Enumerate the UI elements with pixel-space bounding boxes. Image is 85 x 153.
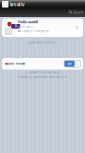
button[interactable]: Search <box>69 10 84 14</box>
staticText: Mobile Theme <box>4 62 25 65</box>
button[interactable]: 13 <box>2 18 83 37</box>
staticText: Powered by WordPress / WPtouch 1.9.9 <box>18 75 67 79</box>
button[interactable]: Site icon <box>2 1 8 7</box>
button[interactable]: Load more entries... <box>0 38 85 47</box>
staticText: Search <box>73 10 84 14</box>
staticText: ON <box>67 62 71 65</box>
staticText: All content Copyright kreativ <box>24 71 60 74</box>
button[interactable]: Mobile Theme on <box>64 60 80 67</box>
staticText: Hello world! <box>18 20 38 24</box>
staticText: Load more entries... <box>28 41 57 44</box>
staticText: 13 <box>15 24 18 28</box>
button[interactable]: kreativ <box>10 2 25 7</box>
staticText: kreativ <box>10 2 25 7</box>
staticText: Categories: Uncategorized <box>21 29 48 32</box>
staticText: By: admin <box>21 25 32 28</box>
